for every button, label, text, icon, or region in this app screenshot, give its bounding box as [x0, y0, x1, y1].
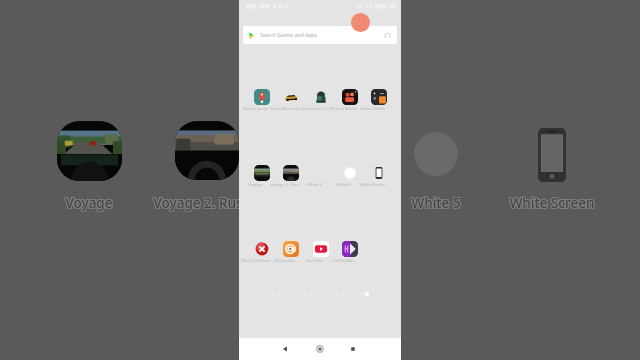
staticText: Heroic Math — [358, 106, 387, 112]
staticText: White Screen — [493, 193, 613, 211]
staticText: Voyage 2. Russia — [148, 195, 268, 213]
staticText: White 5 — [376, 194, 496, 212]
staticText: Voyage — [29, 193, 149, 211]
staticText: Voyage — [28, 195, 148, 213]
button[interactable]: YouTube — [306, 241, 335, 265]
staticText: White Screen — [492, 193, 612, 211]
button[interactable]: Voyage — [29, 115, 149, 213]
staticText: Voyage — [30, 193, 150, 211]
button[interactable]: White 5 — [335, 165, 364, 189]
button[interactable]: Account — [351, 13, 370, 32]
button[interactable]: Heroic Math — [364, 89, 393, 113]
staticText: Voyage 2. Russia — [146, 193, 266, 211]
button[interactable]: White Screen — [364, 165, 393, 189]
staticText: Voyage 2. Russia — [146, 195, 266, 213]
staticText: Voyage — [29, 195, 149, 213]
button[interactable]: Voyage — [247, 165, 276, 189]
button[interactable]: Word Of Freedom — [247, 241, 276, 265]
staticText: White Screen — [491, 193, 611, 211]
staticText: White Screen — [493, 194, 613, 212]
staticText: White 5 — [375, 195, 495, 213]
staticText: White Screen — [491, 195, 611, 213]
staticText: Voyage 2. Russia — [148, 194, 268, 212]
staticText: Ultra Drive Cars — [300, 106, 329, 112]
button[interactable]: Ultra Drive Cars — [306, 89, 335, 113]
button[interactable]: Voyage 2. Russia — [147, 115, 267, 213]
staticText: Voyage — [29, 194, 149, 212]
staticText: XRecorder — [270, 258, 299, 264]
staticText: White Screen — [493, 195, 613, 213]
staticText: Voyage 2. Russia — [147, 193, 267, 211]
button[interactable]: FulPlayMax — [335, 241, 364, 265]
staticText: Voyage 2. Russia — [146, 194, 266, 212]
button[interactable]: Pinto Machines — [276, 89, 305, 113]
staticText: FulPlayMax — [329, 258, 358, 264]
button[interactable]: White 5 — [376, 115, 496, 213]
staticText: Voyage 2. Russia — [147, 194, 267, 212]
staticText: Search Games and Apps — [260, 32, 317, 39]
staticText: Pinto Machines — [270, 106, 299, 112]
button[interactable]: Back — [271, 338, 299, 360]
staticText: White Screen — [358, 182, 387, 188]
staticText: White 4 — [300, 182, 329, 188]
button[interactable]: XRecorder — [276, 241, 305, 265]
staticText: White 5 — [377, 193, 497, 211]
staticText: YouTube — [300, 258, 329, 264]
button[interactable]: Home — [306, 338, 334, 360]
staticText: Voyage 2. Russia — [147, 195, 267, 213]
staticText: White 5 — [375, 194, 495, 212]
staticText: White Screen — [492, 195, 612, 213]
staticText: Voyage 2. Russia — [148, 193, 268, 211]
button[interactable]: White Screen — [492, 115, 612, 213]
staticText: White 5 — [377, 194, 497, 212]
staticText: Voyage — [28, 194, 148, 212]
staticText: Word Of Freedom — [241, 258, 270, 264]
staticText: White 5 — [376, 195, 496, 213]
button[interactable]: Recents — [339, 338, 367, 360]
staticText: Picture Wheel — [329, 106, 358, 112]
staticText: White 5 — [329, 182, 358, 188]
staticText: Voyage — [30, 194, 150, 212]
button[interactable]: Picture Wheel — [335, 89, 364, 113]
staticText: Rocket Jump — [241, 106, 270, 112]
staticText: White Screen — [492, 194, 612, 212]
staticText: Voyage — [30, 195, 150, 213]
staticText: Voyage — [28, 193, 148, 211]
staticText: White 5 — [375, 193, 495, 211]
staticText: White 5 — [377, 195, 497, 213]
staticText: Voyage — [241, 182, 270, 188]
button[interactable]: Voyage 2. Russia — [276, 165, 305, 189]
button[interactable]: Rocket Jump — [247, 89, 276, 113]
staticText: White 5 — [376, 193, 496, 211]
button[interactable]: Search Games and Apps — [243, 26, 397, 44]
button[interactable]: White 4 — [306, 165, 335, 189]
staticText: Voyage 2. Russia — [270, 182, 299, 188]
staticText: White Screen — [491, 194, 611, 212]
